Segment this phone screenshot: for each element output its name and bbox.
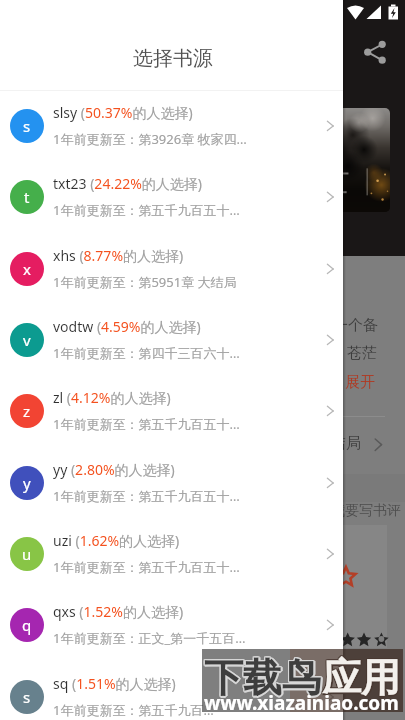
button[interactable]: y <box>0 447 343 518</box>
button[interactable]: t <box>0 161 343 232</box>
button[interactable]: u <box>0 518 343 589</box>
staticText: 1年前更新至：第四千三百六十… <box>53 344 240 362</box>
staticText: qxs (1.52%的人选择) <box>53 602 184 621</box>
button[interactable]: s <box>0 90 343 161</box>
staticText: 下载鸟 <box>205 654 322 703</box>
staticText: 1年前更新至：第五千九百… <box>53 701 214 719</box>
staticText: 应用 <box>321 652 399 701</box>
staticText: 下载鸟 <box>203 652 320 701</box>
staticText: slsy (50.37%的人选择) <box>53 103 193 122</box>
staticText: 结局 <box>331 434 361 453</box>
staticText: y <box>23 473 31 493</box>
staticText: 一个备 <box>333 316 378 335</box>
button[interactable]: q <box>0 589 343 660</box>
button[interactable]: z <box>0 375 343 446</box>
staticText: 1年前更新至：第五千九百五十… <box>53 558 240 576</box>
staticText: t <box>24 187 30 207</box>
button[interactable]: v <box>0 304 343 375</box>
staticText: 1年前更新至：第3926章 牧家四… <box>53 130 247 148</box>
staticText: 应用 <box>324 653 402 702</box>
staticText: 1年前更新至：第五千九百五十… <box>53 201 240 219</box>
staticText: 应用 <box>323 654 401 703</box>
staticText: 1年前更新至：第五千九百五十… <box>53 415 240 433</box>
staticText: xhs (8.77%的人选择) <box>53 246 184 265</box>
staticText: zl (4.12%的人选择) <box>53 388 171 407</box>
staticText: 应用 <box>323 652 401 701</box>
staticText: 下载鸟 <box>204 652 321 701</box>
staticText: 下载鸟 <box>206 653 323 702</box>
staticText: z <box>23 401 31 421</box>
staticText: s <box>23 116 31 136</box>
staticText: 下载鸟 <box>205 652 322 701</box>
staticText: 应用 <box>321 654 399 703</box>
staticText: u <box>22 544 32 564</box>
staticText: 下载鸟 <box>203 654 320 703</box>
staticText: sq (1.51%的人选择) <box>53 674 176 693</box>
staticText: 下载鸟 <box>203 653 320 702</box>
staticText: v <box>23 330 31 350</box>
staticText: 应用 <box>321 653 399 702</box>
staticText: 我要写书评 <box>331 502 401 520</box>
staticText: 下载鸟 <box>204 653 321 702</box>
staticText: 展开 <box>345 373 375 392</box>
staticText: 下载鸟 <box>204 655 321 704</box>
staticText: 应用 <box>322 655 400 704</box>
staticText: yy (2.80%的人选择) <box>53 460 175 479</box>
staticText: 选择书源 <box>133 46 213 71</box>
staticText: s <box>23 687 31 707</box>
staticText: www.xiazainiao.com <box>204 690 399 712</box>
staticText: q <box>22 615 32 635</box>
staticText: txt23 (24.22%的人选择) <box>53 174 202 193</box>
staticText: vodtw (4.59%的人选择) <box>53 317 201 336</box>
button[interactable]: x <box>0 233 343 304</box>
staticText: 1年前更新至：正文_第一千五百… <box>53 629 246 647</box>
staticText: 1年前更新至：第五千九百五十… <box>53 487 240 505</box>
staticText: 1年前更新至：第5951章 大结局 <box>53 273 237 291</box>
staticText: x <box>23 259 31 279</box>
staticText: 苍茫 <box>347 344 377 363</box>
staticText: 应用 <box>322 652 400 701</box>
staticText: uzi (1.62%的人选择) <box>53 531 180 550</box>
button[interactable]: Share <box>358 35 394 71</box>
staticText: 应用 <box>322 653 400 702</box>
button[interactable]: s <box>0 661 343 720</box>
